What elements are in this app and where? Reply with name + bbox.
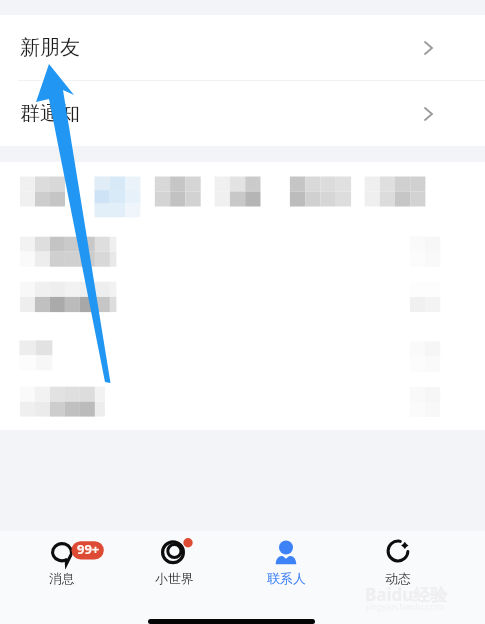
staticText: jingyan.baidu.com — [366, 600, 444, 612]
staticText: 联系人 — [267, 571, 306, 587]
staticText: 动态 — [385, 571, 411, 587]
button[interactable]: 联系人 — [230, 531, 342, 587]
button[interactable]: 动态 — [342, 531, 454, 587]
staticText: 群通知 — [20, 101, 80, 126]
staticText: 99+ — [77, 540, 100, 558]
button[interactable]: 新朋友 — [0, 15, 485, 80]
button[interactable]: 小世界 — [118, 531, 230, 587]
staticText: 新朋友 — [20, 35, 80, 60]
button[interactable]: 群通知 — [0, 81, 485, 146]
staticText: 小世界 — [155, 571, 194, 587]
staticText: 消息 — [49, 571, 75, 587]
button[interactable]: 99+ — [5, 531, 118, 587]
staticText: Baidu经验 — [365, 583, 448, 606]
